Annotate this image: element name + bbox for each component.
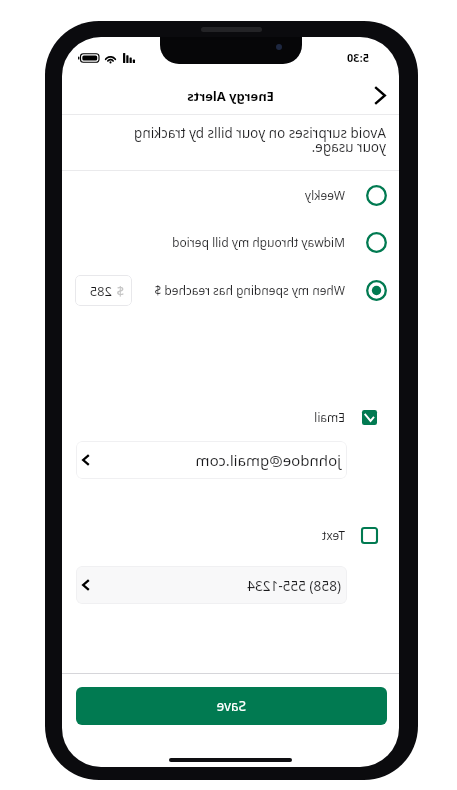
- staticText: When my spending has reached $: [154, 282, 345, 298]
- button[interactable]: Back: [362, 77, 399, 114]
- staticText: 285: [89, 282, 112, 300]
- staticText: (858) 555-1234: [247, 576, 341, 595]
- button[interactable]: Save: [76, 687, 387, 725]
- button[interactable]: When my spending has reached $: [62, 267, 399, 313]
- button[interactable]: (858) 555-1234: [76, 566, 347, 604]
- button[interactable]: Email: [62, 400, 399, 434]
- button[interactable]: Text: [62, 518, 399, 552]
- staticText: Avoid surprises on your bills by trackin…: [110, 124, 386, 156]
- staticText: $: [116, 282, 124, 300]
- button[interactable]: Midway through my bill period: [62, 219, 399, 265]
- staticText: Save: [216, 697, 246, 715]
- staticText: johndoe@gmail.com: [195, 450, 341, 470]
- staticText: 5:30: [347, 50, 369, 65]
- staticText: Text: [321, 527, 345, 543]
- button[interactable]: johndoe@gmail.com: [76, 441, 347, 479]
- button[interactable]: Weekly: [62, 172, 399, 218]
- button[interactable]: $: [75, 275, 132, 306]
- staticText: Energy Alerts: [187, 87, 274, 105]
- staticText: Weekly: [304, 187, 345, 203]
- staticText: Email: [314, 409, 345, 425]
- staticText: Midway through my bill period: [172, 234, 345, 250]
